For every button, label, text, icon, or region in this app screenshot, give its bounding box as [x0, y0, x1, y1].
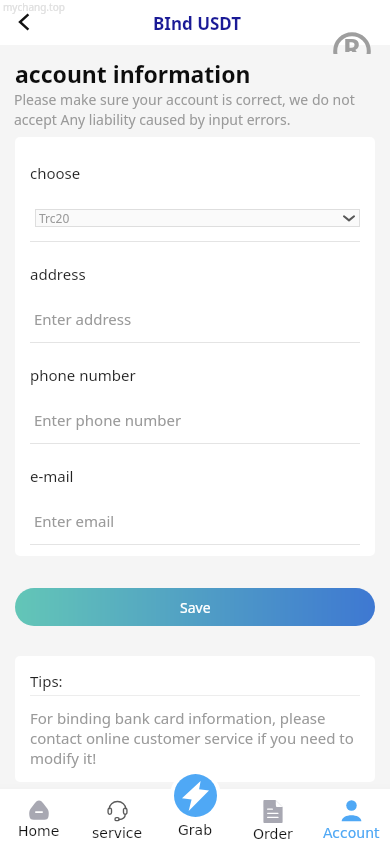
staticText: Tips: [30, 671, 63, 691]
staticText: mychang.top [3, 0, 65, 14]
staticText: account information [15, 58, 251, 89]
staticText: e-mail [30, 466, 74, 486]
button[interactable]: Enter phone number [34, 410, 364, 430]
staticText: Enter address [34, 309, 132, 329]
staticText: Enter email [34, 511, 115, 531]
button[interactable]: Grab [156, 822, 234, 844]
staticText: choose [30, 163, 81, 183]
staticText: For binding bank card information, pleas… [30, 708, 360, 768]
staticText: phone number [30, 365, 136, 385]
staticText: BInd USDT [153, 12, 242, 35]
staticText: Trc20 [39, 210, 70, 226]
button[interactable]: Grab [170, 770, 221, 821]
staticText: Order [253, 826, 293, 842]
staticText: Enter phone number [34, 410, 182, 430]
button[interactable]: Back [8, 6, 40, 38]
button[interactable]: Home [0, 789, 78, 844]
staticText: Save [180, 598, 211, 617]
staticText: address [30, 264, 86, 284]
button[interactable]: Enter address [34, 309, 364, 329]
button[interactable]: Save [15, 588, 375, 626]
button[interactable]: Enter email [34, 511, 364, 531]
button[interactable]: Trc20 [35, 209, 360, 227]
staticText: Please make sure your account is correct… [14, 90, 370, 129]
staticText: Grab [178, 822, 213, 838]
staticText: Home [18, 823, 60, 839]
staticText: service [92, 825, 143, 841]
staticText: R [343, 31, 361, 52]
button[interactable]: Account [312, 789, 390, 844]
button[interactable]: Order [234, 789, 312, 844]
button[interactable]: service [78, 789, 156, 844]
staticText: Account [323, 825, 380, 841]
